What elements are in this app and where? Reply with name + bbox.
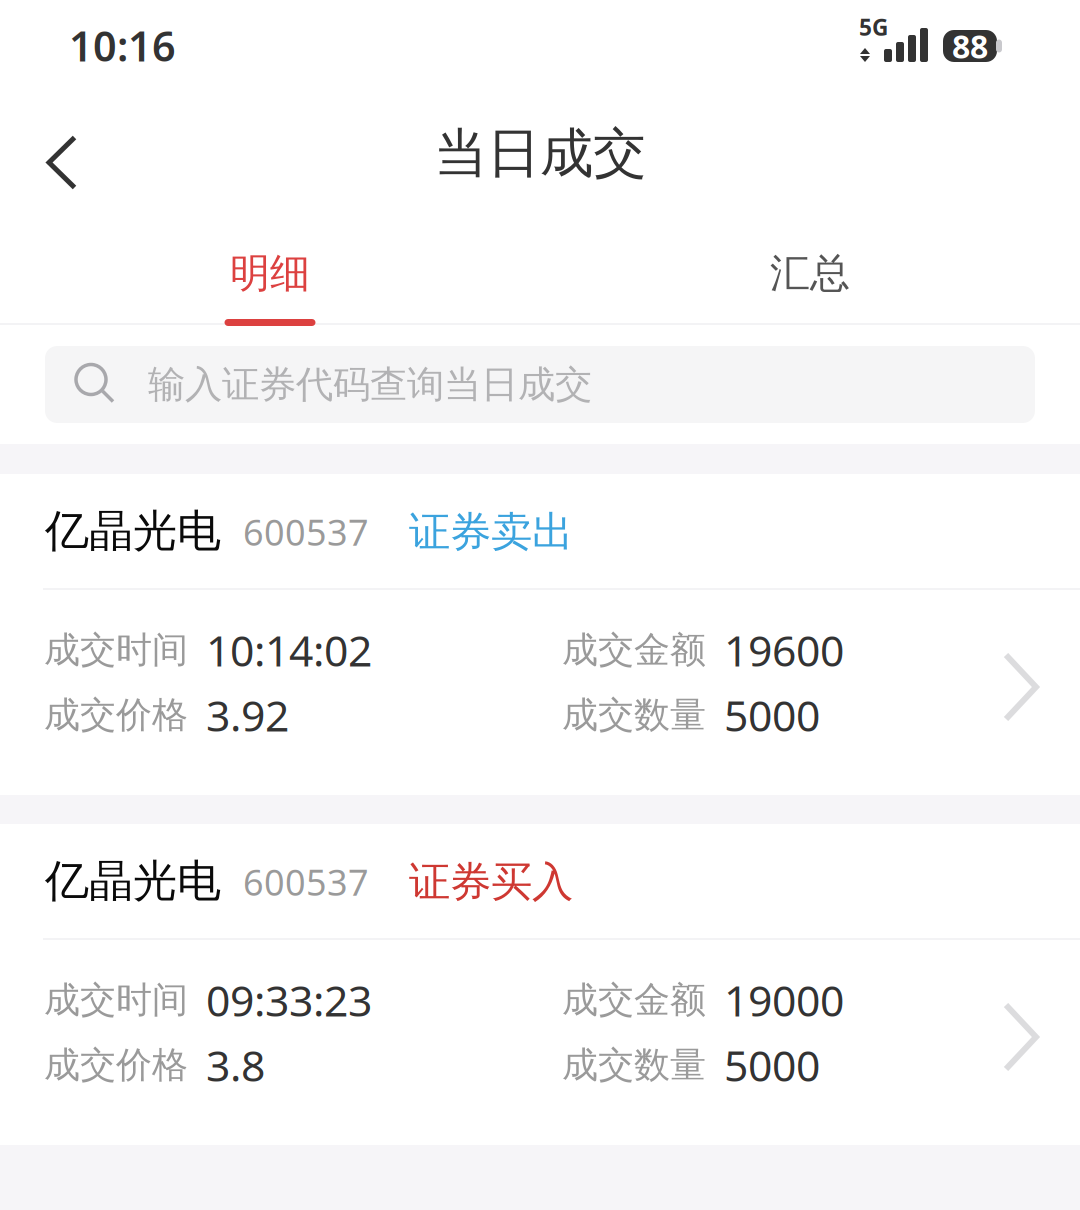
staticText: 证券卖出: [409, 506, 573, 557]
staticText: 5G: [859, 12, 888, 42]
staticText: 成交数量: [562, 693, 706, 737]
staticText: 成交数量: [562, 1043, 706, 1087]
staticText: 证券买入: [409, 856, 573, 907]
staticText: 成交价格: [44, 1043, 188, 1087]
staticText: 10:14:02: [206, 622, 372, 678]
staticText: 88: [952, 25, 988, 67]
button[interactable]: Back: [12, 103, 112, 203]
staticText: 成交金额: [562, 978, 706, 1022]
staticText: 亿晶光电: [45, 854, 221, 908]
staticText: 5000: [724, 687, 820, 743]
button[interactable]: 输入证券代码查询当日成交: [45, 346, 1035, 423]
staticText: 成交时间: [44, 628, 188, 672]
staticText: 亿晶光电: [45, 504, 221, 558]
staticText: 输入证券代码查询当日成交: [148, 362, 592, 407]
staticText: 3.92: [206, 687, 289, 743]
staticText: 当日成交: [434, 121, 646, 186]
staticText: 09:33:23: [206, 972, 372, 1028]
staticText: 汇总: [770, 249, 850, 298]
button[interactable]: 明细: [0, 215, 540, 325]
staticText: 600537: [243, 858, 369, 906]
staticText: 5000: [724, 1037, 820, 1093]
staticText: 成交价格: [44, 693, 188, 737]
staticText: 10:16: [69, 18, 176, 73]
button[interactable]: 汇总: [540, 215, 1080, 325]
staticText: 3.8: [206, 1037, 265, 1093]
staticText: 19600: [724, 622, 844, 678]
staticText: 明细: [230, 249, 310, 298]
staticText: 成交金额: [562, 628, 706, 672]
staticText: 成交时间: [44, 978, 188, 1022]
staticText: 19000: [724, 972, 844, 1028]
staticText: 600537: [243, 508, 369, 556]
button[interactable]: 亿晶光电: [0, 474, 1080, 795]
button[interactable]: 亿晶光电: [0, 824, 1080, 1145]
